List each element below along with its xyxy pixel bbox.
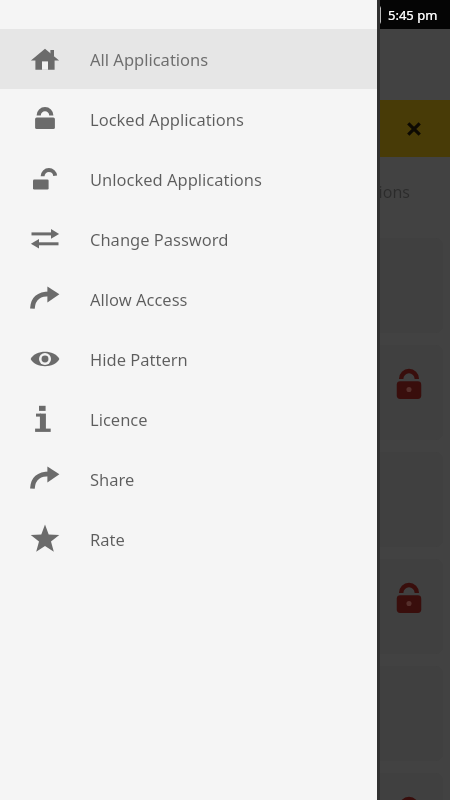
staticText: Rate <box>90 528 125 550</box>
staticText: Unlocked Applications <box>90 168 262 190</box>
button[interactable] <box>298 238 443 333</box>
button[interactable]: Close banner <box>0 100 450 157</box>
staticText: Allow Access <box>90 288 188 310</box>
button[interactable]: Change Password <box>0 209 377 269</box>
staticText: All Applications <box>90 48 209 70</box>
staticText: Change Password <box>90 228 229 250</box>
button[interactable] <box>298 345 443 440</box>
button[interactable]: Rate <box>0 509 377 569</box>
staticText: Locked Applications <box>90 108 244 130</box>
staticText: Share <box>90 468 135 490</box>
button[interactable] <box>298 452 443 547</box>
button[interactable]: Allow Access <box>0 269 377 329</box>
button[interactable]: Unlocked Applications <box>0 149 377 209</box>
button[interactable]: Share <box>0 449 377 509</box>
button[interactable] <box>298 773 443 800</box>
staticText: Applications <box>318 181 410 203</box>
button[interactable]: Hide Pattern <box>0 329 377 389</box>
button[interactable] <box>298 559 443 654</box>
staticText: 5:45 pm <box>388 6 438 24</box>
staticText: Licence <box>90 408 148 430</box>
staticText: Hide Pattern <box>90 348 188 370</box>
button[interactable]: Licence <box>0 389 377 449</box>
button[interactable]: All Applications <box>0 29 377 89</box>
button[interactable]: Locked Applications <box>0 89 377 149</box>
button[interactable] <box>298 666 443 761</box>
